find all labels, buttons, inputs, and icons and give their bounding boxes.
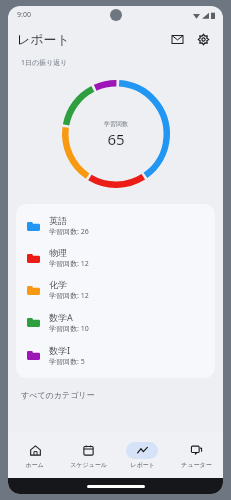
staticText: 1日の振り返り [21, 58, 68, 68]
staticText: 学習回数: 5 [49, 357, 85, 367]
staticText: 英語 [49, 215, 67, 226]
staticText: レポート [130, 461, 155, 469]
staticText: スケジュール [70, 461, 107, 469]
button[interactable]: 数学I [16, 339, 215, 372]
staticText: 数学A [49, 311, 73, 323]
button[interactable]: チューター [169, 432, 223, 478]
button[interactable]: スケジュール [61, 432, 115, 478]
staticText: 9:00 [17, 10, 31, 20]
staticText: 65 [107, 129, 125, 149]
button[interactable]: 英語 [16, 210, 215, 242]
staticText: レポート [17, 31, 70, 47]
staticText: 学習回数: 10 [49, 324, 89, 334]
staticText: 学習回数: 12 [49, 291, 89, 301]
button[interactable]: レポート [115, 432, 169, 478]
button[interactable]: Settings [192, 28, 214, 50]
button[interactable]: ホーム [8, 432, 61, 478]
staticText: ホーム [25, 461, 44, 469]
button[interactable]: 物理 [16, 242, 215, 274]
staticText: チューター [181, 461, 212, 469]
staticText: 学習回数 [104, 120, 128, 128]
staticText: 学習回数: 26 [49, 227, 89, 237]
staticText: すべてのカテゴリー [21, 390, 95, 400]
button[interactable]: Mail [166, 28, 188, 50]
staticText: 数学I [49, 344, 71, 356]
button[interactable]: すべてのカテゴリー [8, 388, 223, 402]
button[interactable]: 数学A [16, 306, 215, 339]
staticText: 学習回数: 12 [49, 259, 89, 269]
button[interactable]: 化学 [16, 274, 215, 306]
staticText: 物理 [49, 247, 67, 258]
staticText: 化学 [49, 279, 67, 290]
